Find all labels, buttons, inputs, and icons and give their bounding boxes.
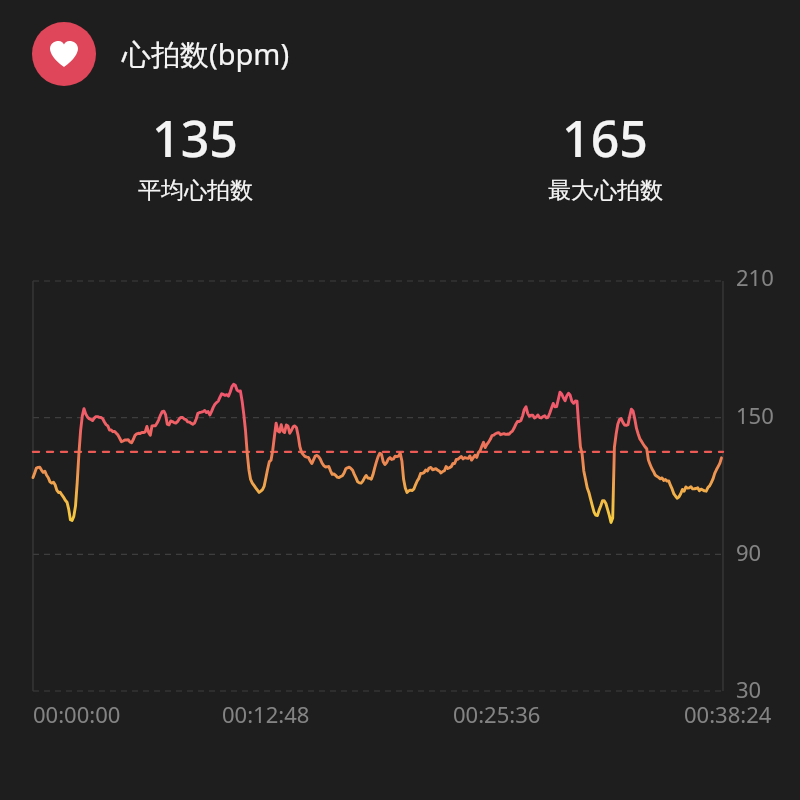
staticText: 00:00:00: [33, 699, 121, 729]
other: Heart rate: [32, 22, 96, 86]
staticText: 90: [736, 537, 762, 567]
staticText: 00:12:48: [222, 699, 310, 729]
staticText: 150: [736, 400, 774, 430]
staticText: 135: [152, 104, 238, 172]
button[interactable]: 165: [485, 104, 725, 205]
staticText: 210: [736, 262, 774, 292]
button[interactable]: 135: [75, 104, 315, 205]
staticText: 00:25:36: [453, 699, 541, 729]
staticText: 30: [736, 674, 762, 704]
staticText: 平均心拍数: [138, 176, 253, 205]
staticText: 165: [562, 104, 648, 172]
staticText: 心拍数(bpm): [122, 34, 290, 74]
button[interactable]: Heart rate: [32, 22, 290, 86]
staticText: 最大心拍数: [548, 176, 663, 205]
staticText: 00:38:24: [684, 699, 772, 729]
